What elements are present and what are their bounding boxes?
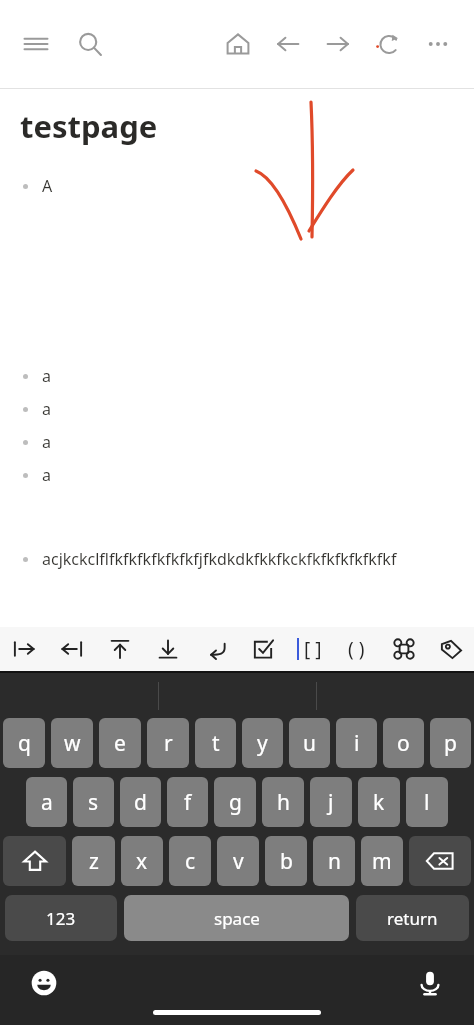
button[interactable]: f <box>167 777 208 827</box>
staticText: [ ] <box>304 636 322 662</box>
staticText: return <box>387 907 438 930</box>
button[interactable]: Command <box>380 627 427 671</box>
button[interactable]: Menu <box>14 22 58 66</box>
button[interactable]: y <box>242 718 283 768</box>
button[interactable]: a <box>0 398 474 420</box>
staticText: t <box>212 729 220 758</box>
staticText: ( ) <box>348 636 365 662</box>
button[interactable]: s <box>73 777 114 827</box>
button[interactable]: Outdent <box>48 627 96 671</box>
staticText: s <box>88 788 99 817</box>
staticText: o <box>397 729 410 758</box>
staticText: a <box>41 788 53 817</box>
staticText: q <box>18 729 31 758</box>
button[interactable]: a <box>0 365 474 387</box>
button[interactable]: Home <box>216 22 260 66</box>
button[interactable]: m <box>361 836 403 886</box>
staticText: r <box>164 729 173 758</box>
button[interactable]: Tag <box>427 627 474 671</box>
button[interactable]: a <box>26 777 67 827</box>
button[interactable]: Checkbox <box>239 627 286 671</box>
staticText: p <box>444 729 457 758</box>
button[interactable]: Forward <box>316 22 360 66</box>
staticText: a <box>42 431 51 453</box>
button[interactable]: k <box>358 777 400 827</box>
button[interactable]: z <box>72 836 115 886</box>
button[interactable]: Move down <box>144 627 192 671</box>
button[interactable]: w <box>51 718 93 768</box>
button[interactable]: b <box>265 836 307 886</box>
button[interactable]: v <box>217 836 259 886</box>
staticText: w <box>64 729 81 758</box>
button[interactable]: New line <box>192 627 239 671</box>
button[interactable]: x <box>121 836 163 886</box>
staticText: d <box>134 788 147 817</box>
button[interactable]: n <box>313 836 355 886</box>
staticText: 123 <box>46 907 76 930</box>
button[interactable]: u <box>289 718 330 768</box>
staticText: j <box>328 788 334 817</box>
staticText: b <box>280 847 293 876</box>
staticText: g <box>229 788 242 817</box>
staticText: a <box>42 464 51 486</box>
button[interactable]: Parentheses <box>333 627 380 671</box>
button[interactable]: acjkckclflfkfkfkfkfkfkfjfkdkdkfkkfkckfkf… <box>0 548 474 570</box>
button[interactable]: 123 <box>5 895 117 941</box>
staticText: h <box>277 788 290 817</box>
button[interactable]: l <box>406 777 448 827</box>
staticText: v <box>233 847 244 876</box>
button[interactable]: return <box>356 895 469 941</box>
button[interactable]: More options <box>416 22 460 66</box>
staticText: e <box>114 729 126 758</box>
button[interactable]: o <box>383 718 424 768</box>
button[interactable]: a <box>0 431 474 453</box>
staticText: space <box>214 907 260 930</box>
button[interactable]: r <box>147 718 189 768</box>
staticText: f <box>184 788 192 817</box>
button[interactable]: q <box>3 718 45 768</box>
staticText: z <box>89 847 99 876</box>
button[interactable]: Back <box>266 22 310 66</box>
staticText: y <box>257 729 268 758</box>
staticText: x <box>136 847 148 876</box>
button[interactable]: e <box>99 718 141 768</box>
button[interactable]: g <box>214 777 256 827</box>
button[interactable]: c <box>169 836 211 886</box>
button[interactable]: Reload <box>366 22 410 66</box>
staticText: k <box>373 788 385 817</box>
staticText: i <box>354 729 360 758</box>
staticText: l <box>424 788 430 817</box>
button[interactable]: Voice input <box>408 961 452 1005</box>
button[interactable]: t <box>195 718 236 768</box>
button[interactable]: Backspace <box>409 836 471 886</box>
button[interactable]: A <box>0 175 474 197</box>
staticText: n <box>328 847 341 876</box>
staticText: m <box>372 847 392 876</box>
staticText: acjkckclflfkfkfkfkfkfkfjfkdkdkfkkfkckfkf… <box>42 548 397 570</box>
button[interactable]: a <box>0 464 474 486</box>
button[interactable]: Emoji <box>22 961 66 1005</box>
staticText: u <box>303 729 316 758</box>
button[interactable]: space <box>124 895 349 941</box>
staticText: a <box>42 365 51 387</box>
button[interactable]: Brackets <box>286 627 333 671</box>
staticText: testpage <box>20 105 158 147</box>
button[interactable]: j <box>310 777 352 827</box>
button[interactable]: Search <box>68 22 112 66</box>
staticText: a <box>42 398 51 420</box>
button[interactable]: Move up <box>96 627 144 671</box>
staticText: A <box>42 175 53 197</box>
button[interactable]: Shift <box>3 836 66 886</box>
button[interactable]: i <box>336 718 377 768</box>
button[interactable]: h <box>262 777 304 827</box>
staticText: c <box>185 847 196 876</box>
button[interactable]: Indent <box>0 627 48 671</box>
button[interactable]: d <box>120 777 161 827</box>
button[interactable]: p <box>430 718 471 768</box>
